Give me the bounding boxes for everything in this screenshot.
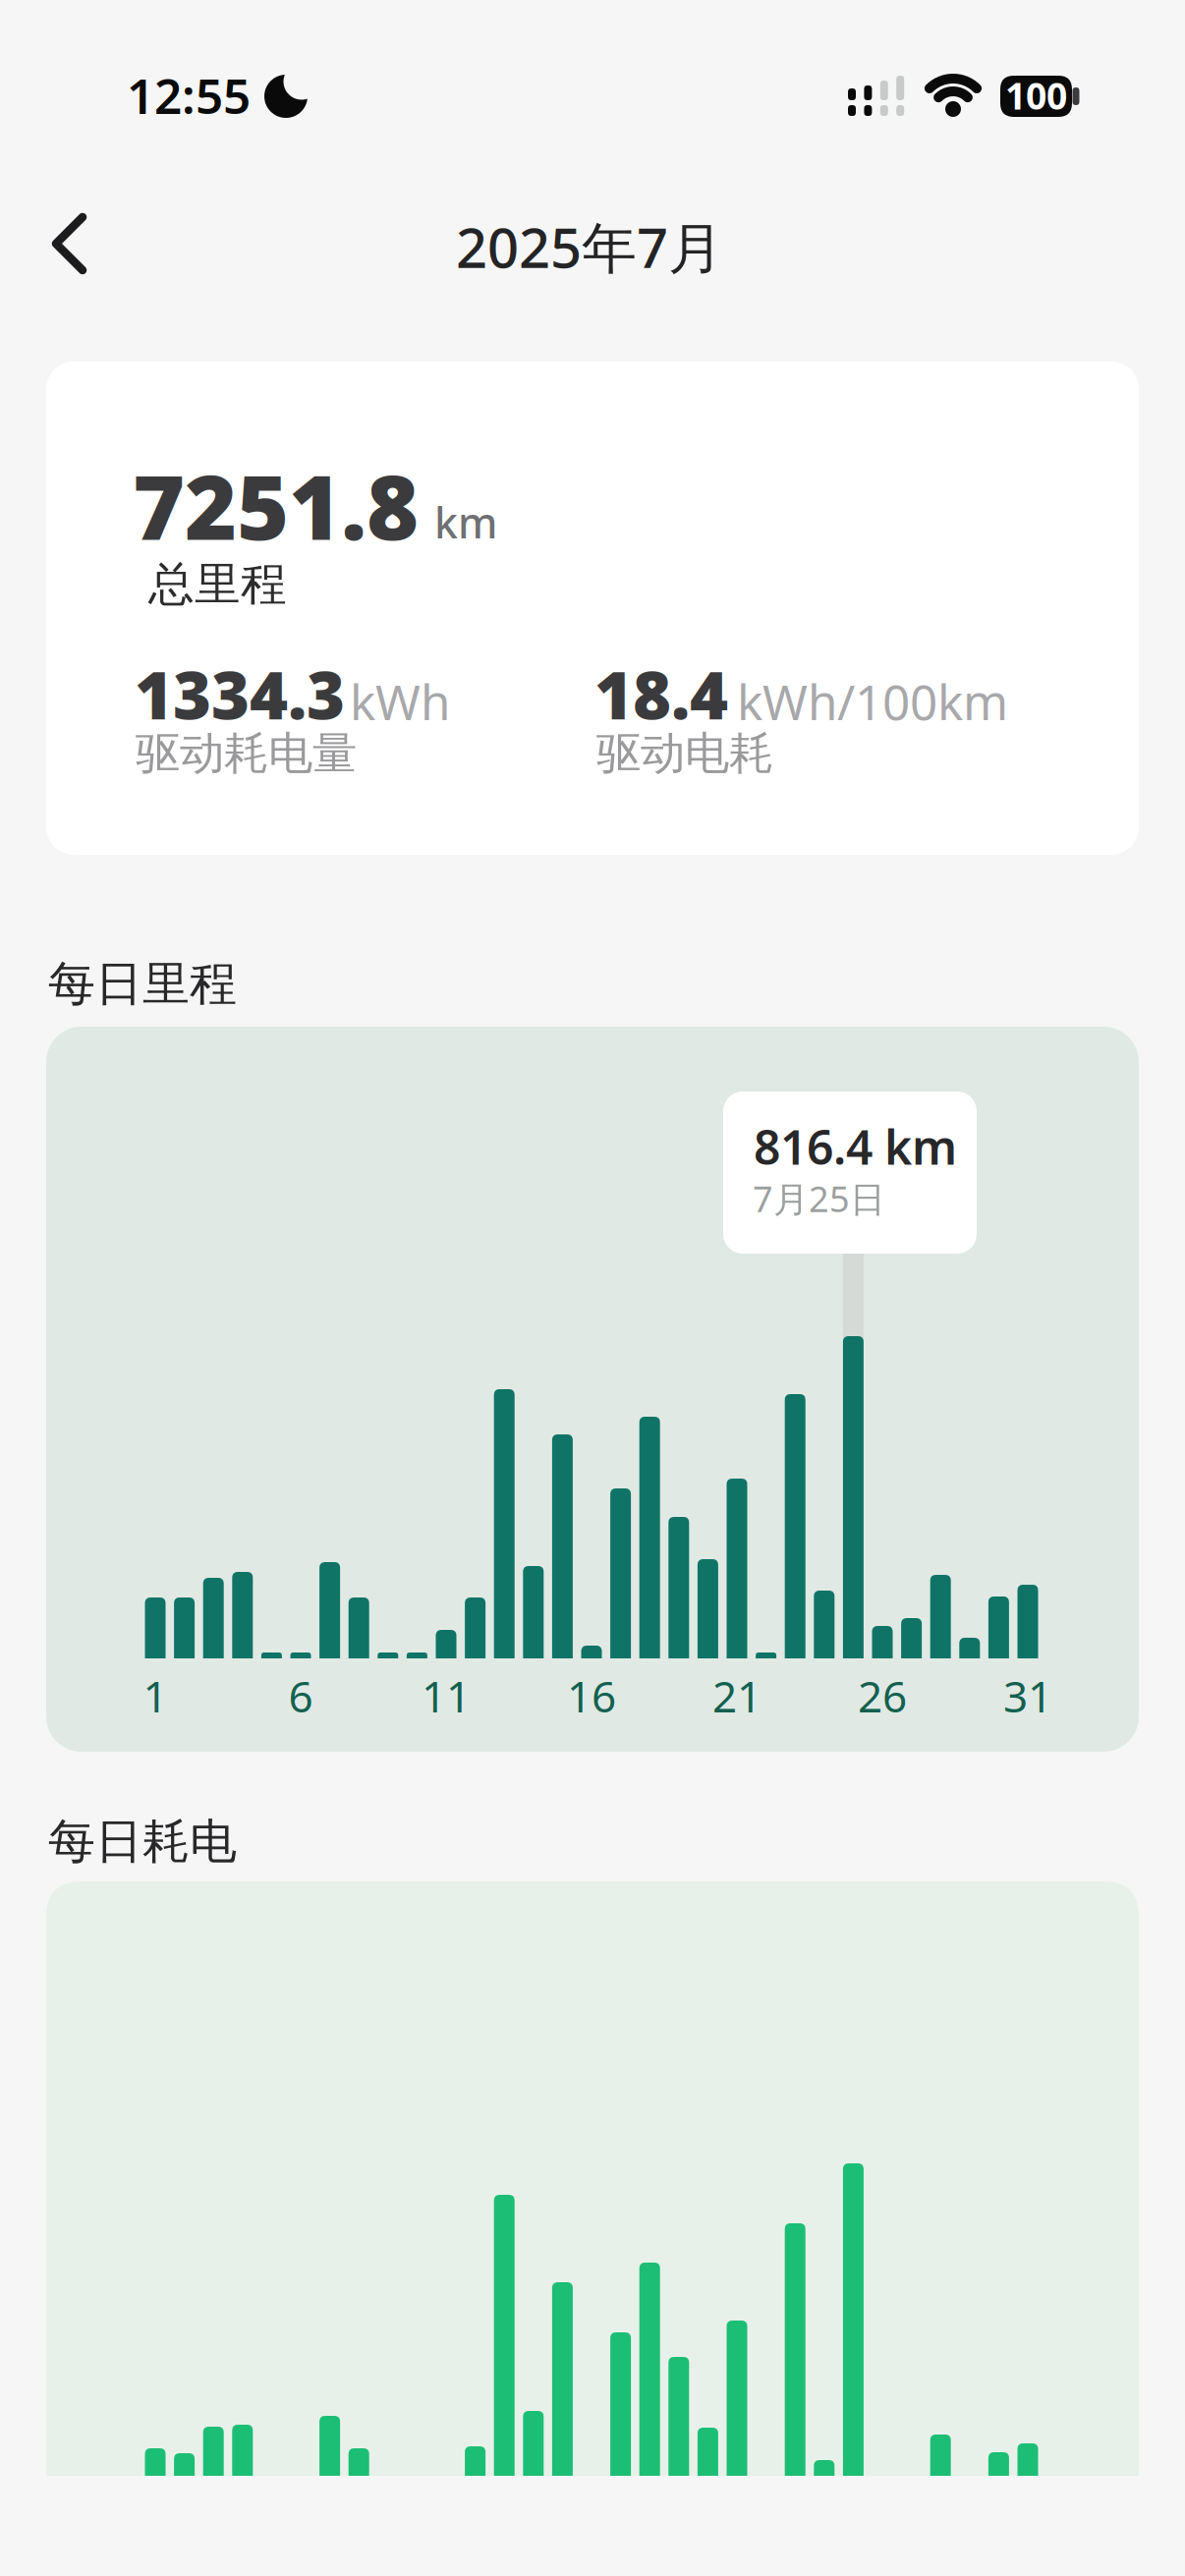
staticText: 总里程	[148, 556, 287, 612]
staticText: 31	[1003, 1667, 1052, 1724]
staticText: 1334.3	[135, 650, 345, 737]
staticText: 18.4	[594, 650, 728, 737]
staticText: 每日耗电	[48, 1813, 237, 1871]
staticText: 6	[288, 1667, 313, 1724]
staticText: 每日里程	[48, 955, 237, 1013]
staticText: 7251.8	[133, 446, 419, 564]
staticText: 16	[567, 1667, 616, 1724]
staticText: 7月25日	[753, 1175, 885, 1222]
button[interactable]	[20, 177, 157, 314]
staticText: 12:55	[127, 63, 251, 127]
staticText: 21	[712, 1667, 762, 1724]
staticText: 2025年7月	[456, 210, 723, 283]
staticText: 驱动电耗	[596, 726, 773, 781]
staticText: 816.4 km	[754, 1115, 957, 1178]
staticText: km	[434, 494, 497, 550]
staticText: 1	[143, 1667, 168, 1724]
staticText: 11	[422, 1667, 471, 1724]
staticText: 100	[1005, 71, 1067, 120]
staticText: 驱动耗电量	[136, 726, 357, 781]
staticText: 26	[858, 1667, 907, 1724]
staticText: kWh	[350, 669, 450, 733]
staticText: kWh/100km	[737, 669, 1008, 733]
